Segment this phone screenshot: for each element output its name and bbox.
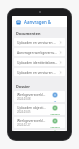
button[interactable]: Menu: [12, 16, 67, 27]
other: Open: [59, 51, 62, 54]
other: Menu: [15, 19, 21, 25]
staticText: 2024-03-05: [17, 110, 31, 114]
other: In beoordeling: [52, 92, 58, 98]
other: Akkoord: [52, 105, 58, 111]
button[interactable]: Werkgeversverklaring overig: [14, 91, 65, 102]
staticText: Dossier: [16, 84, 31, 89]
staticText: Akkoord: [50, 112, 60, 115]
staticText: In beoordeling: [48, 99, 62, 102]
button[interactable]: Uploaden identiteitsbewijs: [14, 58, 65, 66]
staticText: 2024-02-27: [17, 123, 31, 127]
staticText: Aanvragen & uploaden: [24, 19, 64, 25]
other: Akkoord: [52, 130, 58, 131]
other: Akkoord: [52, 118, 58, 124]
button[interactable]: Uploaden en versturen BKR: [14, 68, 65, 76]
button[interactable]: Uploaden objectief verificatie: [14, 104, 65, 115]
staticText: Akkoord: [50, 125, 60, 128]
staticText: Uploaden en versturen KVK: [17, 40, 58, 44]
staticText: Uploaden en versturen BKR: [17, 70, 58, 74]
staticText: Werkgeversverklaring overig: [17, 92, 47, 96]
button[interactable]: Uploaden en versturen KVK: [14, 38, 65, 46]
other: Open: [59, 71, 62, 74]
other: Open: [59, 41, 62, 44]
button[interactable]: Werkgeversverklaring overig: [14, 117, 65, 128]
staticText: 2024-03-08: [17, 97, 31, 101]
other: Open: [59, 61, 62, 64]
button[interactable]: Bewijs inkomen loog: [14, 130, 65, 131]
staticText: Documenten: [16, 31, 41, 36]
staticText: Werkgeversverklaring overig: [17, 118, 47, 122]
staticText: Uploaden identiteitsbewijs: [17, 60, 58, 64]
button[interactable]: Aanvragen werkgeversverklaring overig: [14, 48, 65, 56]
staticText: Uploaden objectief verificatie: [17, 105, 47, 109]
staticText: Aanvragen werkgeversverklaring overig: [17, 50, 58, 54]
